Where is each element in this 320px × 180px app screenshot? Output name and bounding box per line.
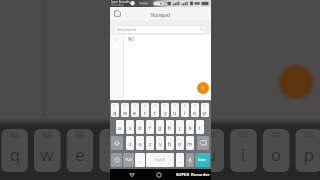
button[interactable]: 5	[151, 103, 159, 117]
staticText: 7	[174, 104, 176, 108]
staticText: 0	[204, 104, 206, 108]
staticText: o	[193, 109, 197, 116]
staticText: c	[149, 140, 152, 147]
button[interactable]: j	[176, 120, 184, 134]
button[interactable]: .	[176, 153, 184, 167]
staticText: SUPER	[176, 172, 190, 178]
button[interactable]: back	[197, 136, 209, 150]
staticText: .	[179, 157, 181, 164]
staticText: r	[144, 109, 147, 116]
staticText: 1	[115, 37, 117, 42]
button[interactable]: emoji	[111, 153, 122, 167]
button[interactable]: m	[186, 136, 194, 150]
button[interactable]: 4	[141, 103, 149, 117]
button[interactable]: d	[136, 120, 144, 134]
button[interactable]: s	[126, 120, 134, 134]
staticText: v	[159, 140, 162, 147]
button[interactable]: Back	[127, 170, 137, 180]
staticText: h	[168, 124, 172, 131]
staticText: p	[300, 143, 318, 166]
staticText: q	[6, 143, 24, 166]
staticText: 8	[184, 104, 186, 108]
staticText: q	[113, 109, 117, 116]
staticText: u	[173, 109, 177, 116]
staticText: g	[158, 124, 162, 131]
button[interactable]: l	[196, 120, 204, 134]
button[interactable]: k	[186, 120, 194, 134]
staticText: p	[203, 109, 207, 116]
staticText: b	[168, 140, 172, 147]
staticText: s	[129, 124, 132, 131]
button[interactable]: New note	[197, 82, 209, 94]
button[interactable]: ?123	[123, 153, 134, 167]
staticText: i	[184, 109, 186, 116]
staticText: English	[155, 158, 166, 162]
staticText: Get started	[117, 27, 136, 32]
button[interactable]: g	[156, 120, 164, 134]
staticText: e	[71, 143, 89, 166]
button[interactable]: mic	[186, 153, 194, 167]
staticText: Recorder	[191, 172, 210, 178]
staticText: l	[199, 124, 201, 131]
button[interactable]: n	[176, 136, 184, 150]
staticText: 6	[164, 104, 166, 108]
staticText: Recording	[111, 3, 124, 7]
staticText: i	[234, 143, 252, 166]
button[interactable]: 2	[121, 103, 129, 117]
button[interactable]: space	[146, 153, 174, 167]
staticText: z	[129, 140, 132, 147]
button[interactable]: Home	[154, 170, 164, 180]
staticText: d	[138, 124, 142, 131]
button[interactable]: f	[146, 120, 154, 134]
button[interactable]: 6	[161, 103, 169, 117]
staticText: w	[38, 143, 56, 166]
staticText: r	[104, 143, 122, 166]
staticText: Super Recorder	[111, 0, 130, 4]
staticText: ,	[139, 157, 141, 164]
button[interactable]: v	[156, 136, 164, 150]
button[interactable]: 0	[201, 103, 209, 117]
button[interactable]: h	[166, 120, 174, 134]
staticText: 9	[194, 104, 196, 108]
button[interactable]: Done	[195, 153, 210, 167]
staticText: Notepad	[151, 12, 170, 18]
staticText: %|	[128, 36, 135, 43]
button[interactable]: 3	[131, 103, 139, 117]
staticText: 3	[134, 104, 136, 108]
button[interactable]: x	[136, 136, 144, 150]
staticText: 2	[124, 104, 126, 108]
button[interactable]: 1	[111, 103, 119, 117]
staticText: a	[118, 124, 122, 131]
button[interactable]: ,	[135, 153, 145, 167]
staticText: u	[202, 143, 220, 166]
staticText: ?123	[125, 158, 132, 162]
staticText: k	[189, 124, 192, 131]
button[interactable]: 8	[181, 103, 189, 117]
staticText: e	[133, 109, 137, 116]
button[interactable]: Get started	[114, 25, 206, 34]
staticText: m	[187, 140, 193, 147]
staticText: x	[139, 140, 142, 147]
button[interactable]: shift	[111, 136, 123, 150]
button[interactable]: c	[146, 136, 154, 150]
staticText: w	[123, 109, 128, 116]
other: Clear	[199, 27, 204, 32]
staticText: 5	[154, 104, 156, 108]
staticText: f	[149, 124, 151, 131]
button[interactable]: 9	[191, 103, 199, 117]
staticText: n	[178, 140, 182, 147]
staticText: t	[136, 143, 154, 166]
button[interactable]: a	[116, 120, 124, 134]
staticText: y	[169, 143, 187, 166]
staticText: t	[154, 109, 156, 116]
button[interactable]: b	[166, 136, 174, 150]
button[interactable]: Notes folder	[113, 9, 122, 18]
staticText: y	[164, 109, 167, 116]
staticText: 1	[114, 104, 116, 108]
staticText: o	[267, 143, 285, 166]
button[interactable]: 7	[171, 103, 179, 117]
button[interactable]: z	[126, 136, 134, 150]
staticText: 4	[144, 104, 146, 108]
staticText: Done	[198, 158, 207, 162]
staticText: j	[179, 124, 181, 131]
